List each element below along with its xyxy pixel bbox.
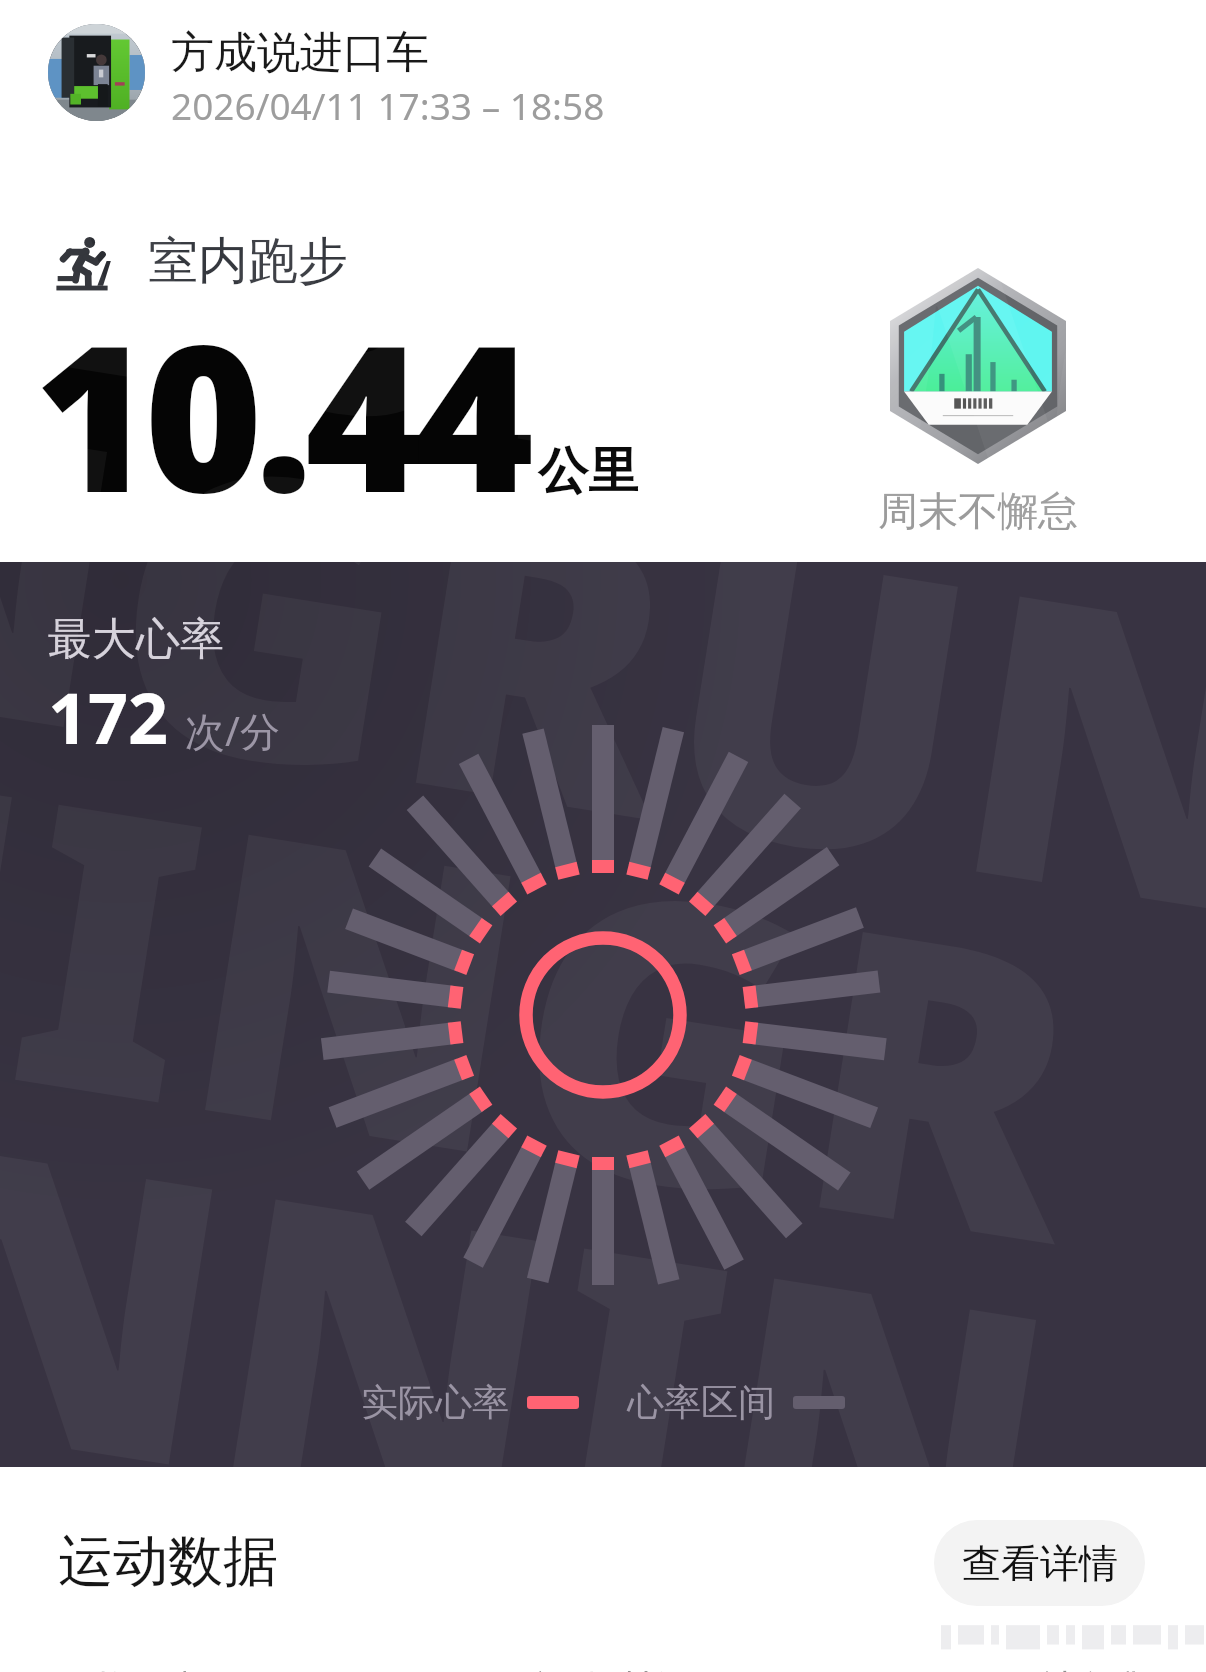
staticText: 172	[48, 669, 169, 764]
button[interactable]: 室内跑步	[50, 229, 348, 293]
staticText: 2026/04/11 17:33 – 18:58	[171, 80, 605, 130]
button[interactable]: 查看详情	[934, 1520, 1145, 1606]
staticText: 心率区间	[627, 1379, 775, 1426]
staticText: 累计爬升	[1008, 1666, 1144, 1672]
staticText: 运动时长	[535, 1666, 671, 1672]
staticText: 最大心率	[48, 612, 224, 667]
button[interactable]: Heart rate chart	[296, 708, 910, 1322]
button[interactable]: 运动数据	[58, 1527, 278, 1596]
staticText: 运动数据	[58, 1527, 278, 1596]
staticText: 室内跑步	[148, 230, 348, 293]
staticText: 10.44	[34, 276, 526, 551]
staticText: 方成说进口车	[171, 26, 429, 80]
staticText: 平均配速	[62, 1666, 198, 1672]
button[interactable]: 方成说进口车	[48, 24, 1166, 130]
staticText: 公里	[538, 440, 638, 503]
button[interactable]: 周末不懈怠	[828, 268, 1128, 536]
staticText: 实际心率	[361, 1379, 509, 1426]
staticText: 周末不懈怠	[878, 486, 1078, 536]
staticText: 查看详情	[962, 1539, 1118, 1588]
staticText: 次/分	[185, 703, 280, 758]
